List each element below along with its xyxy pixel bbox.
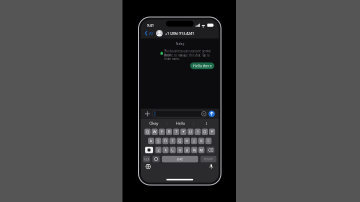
button[interactable]: L [205,138,211,144]
staticText: A [150,138,153,143]
button[interactable]: H [184,138,190,144]
button[interactable]: Send [208,111,215,117]
staticText: I [197,129,198,134]
button[interactable]: J [191,138,197,144]
staticText: K [200,138,202,143]
button[interactable]: Shift [145,147,153,153]
button[interactable]: P [209,129,215,135]
staticText: 20 [149,31,153,36]
button[interactable]: 123 [143,156,150,162]
button[interactable]: E [159,129,165,135]
staticText: U [189,129,192,134]
staticText: Hello there [193,63,212,68]
staticText: Y [182,129,184,134]
staticText: 9:41 [147,22,154,28]
button[interactable]: F [169,138,176,144]
button[interactable]: Z [155,147,161,153]
button[interactable]: Y [180,129,186,135]
button[interactable]: Q [144,129,150,135]
button[interactable]: Back to Messages [141,28,156,39]
button[interactable]: S [155,138,161,144]
staticText: J [194,138,195,143]
staticText: 123 [144,157,150,161]
button[interactable]: Emoji [152,156,160,162]
button[interactable]: space [162,156,198,162]
staticText: S [157,138,159,143]
button[interactable]: I [194,118,219,128]
staticText: P [211,129,213,134]
staticText: C [171,147,174,153]
staticText: E [161,129,163,134]
staticText: Z [157,147,159,153]
staticText: H [185,138,188,143]
staticText: Today [176,42,184,46]
staticText: N [193,147,196,153]
button[interactable]: O [202,129,208,135]
staticText: return [204,157,213,161]
staticText: B [186,147,189,153]
button[interactable]: M [198,147,204,153]
button[interactable]: A [148,138,154,144]
button[interactable]: R [166,129,172,135]
staticText: space [177,157,184,161]
staticText: T [175,129,177,134]
staticText: M [199,147,203,153]
staticText: +1 (206) 913-4241 [165,31,194,36]
button[interactable]: X [162,147,169,153]
button[interactable]: Hello [167,118,193,128]
button[interactable]: W [152,129,158,135]
button[interactable]: C [170,147,176,153]
button[interactable]: I [195,129,201,135]
button[interactable]: B [184,147,190,153]
staticText: V [179,147,181,153]
staticText: R [168,129,170,134]
button[interactable]: Okay [141,118,167,128]
staticText: L [207,138,209,143]
staticText: O [203,129,206,134]
button[interactable]: Add attachment [144,110,151,117]
button[interactable]: Delete [206,147,214,153]
button[interactable]: T [173,129,179,135]
button[interactable]: Dictate [208,163,215,170]
staticText: Hello [176,121,185,126]
staticText: This business uses a secure service from [164,49,211,57]
button[interactable]: N [191,147,197,153]
staticText: X [165,147,167,153]
button[interactable]: K [198,138,204,144]
button[interactable]: V [177,147,183,153]
button[interactable]: return [200,156,216,162]
staticText: Okay [149,121,158,126]
staticText: G [178,138,181,143]
staticText: D [164,138,167,143]
button[interactable]: U [187,129,194,135]
button[interactable]: +1 (206) 913-4241 [156,28,194,39]
button[interactable]: G [177,138,183,144]
staticText: Q [146,129,149,134]
button[interactable]: Switch keyboard [145,163,152,170]
staticText: Apple to manage this chat. Tap to learn … [164,54,210,61]
staticText: I [206,121,207,126]
button[interactable]: D [162,138,168,144]
staticText: W [153,129,157,134]
staticText: F [172,138,174,143]
